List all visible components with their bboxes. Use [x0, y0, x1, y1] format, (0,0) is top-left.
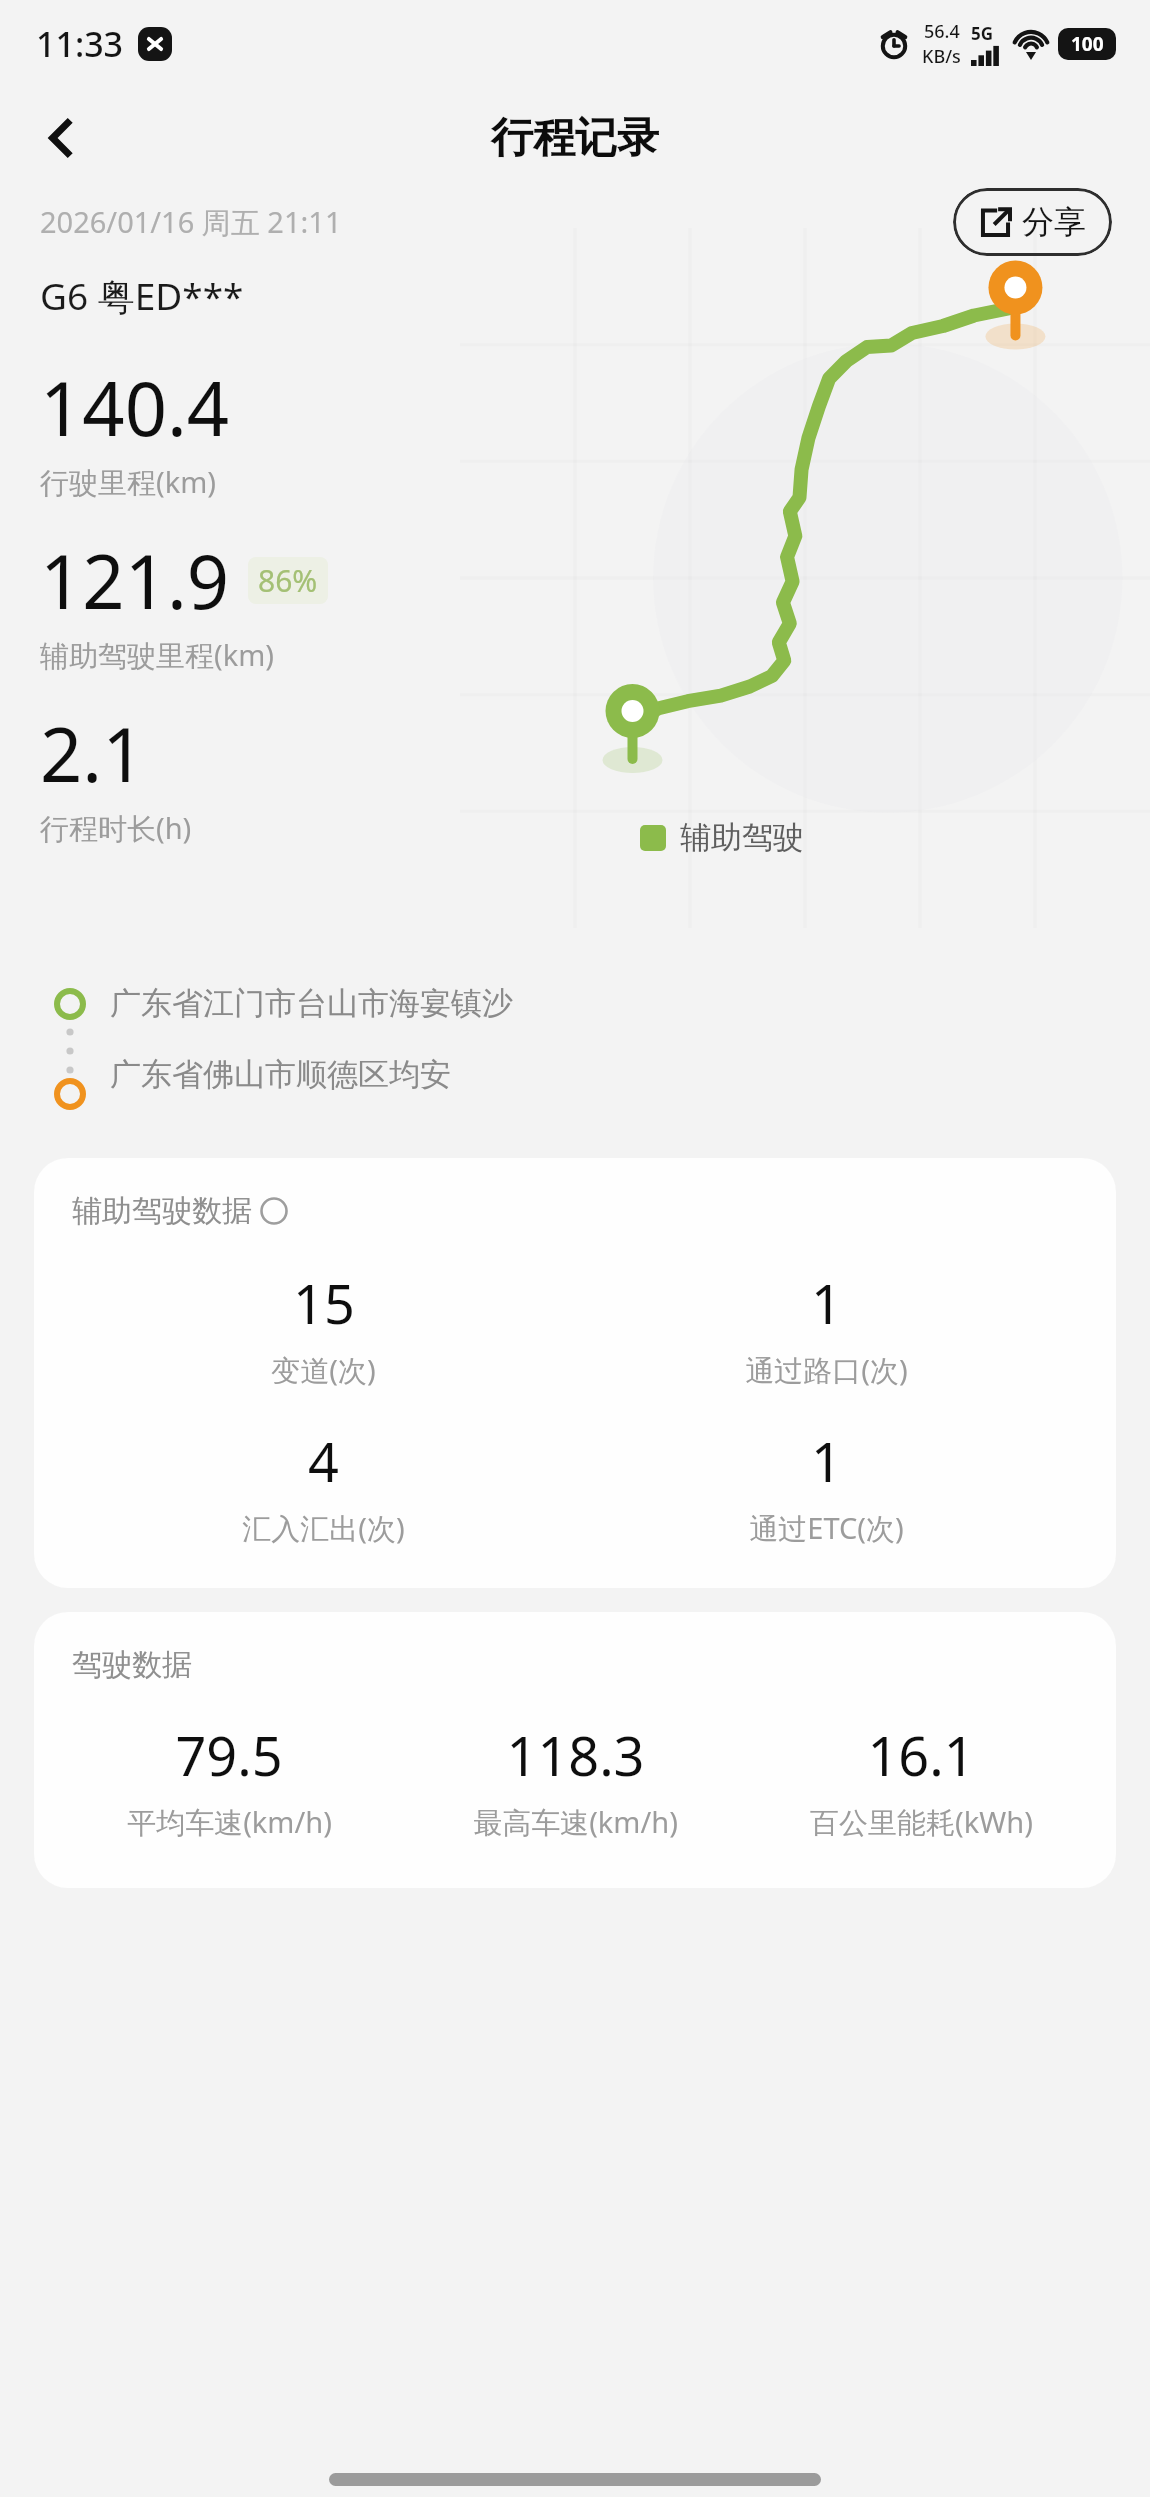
- staticText: 辅助驾驶数据: [72, 1192, 252, 1230]
- staticText: KB/s: [922, 44, 961, 69]
- staticText: 驾驶数据: [72, 1646, 192, 1684]
- staticText: 行程时长(h): [40, 808, 192, 848]
- staticText: 汇入汇出(次): [242, 1508, 405, 1548]
- staticText: 最高车速(km/h): [473, 1802, 678, 1842]
- staticText: 行程记录: [491, 112, 659, 165]
- staticText: 140.4: [40, 357, 230, 458]
- staticText: 分享: [1022, 202, 1086, 242]
- staticText: 广东省江门市台山市海宴镇沙: [110, 984, 513, 1023]
- staticText: 5G: [971, 22, 994, 45]
- button[interactable]: 分享: [953, 188, 1112, 256]
- staticText: 2026/01/16 周五 21:11: [40, 202, 342, 242]
- staticText: 100: [1071, 31, 1104, 57]
- staticText: 行驶里程(km): [40, 462, 217, 502]
- staticText: 4: [308, 1424, 339, 1498]
- staticText: 86%: [258, 560, 318, 601]
- staticText: 广东省佛山市顺德区均安: [110, 1055, 451, 1094]
- staticText: 56.4: [924, 19, 960, 44]
- staticText: 16.1: [867, 1718, 975, 1792]
- staticText: 平均车速(km/h): [127, 1802, 332, 1842]
- staticText: 百公里能耗(kWh): [810, 1802, 1033, 1842]
- button[interactable]: Back: [24, 99, 102, 177]
- button[interactable]: 辅助驾驶数据: [34, 1158, 1116, 1588]
- staticText: 121.9: [40, 530, 230, 631]
- staticText: 通过ETC(次): [749, 1508, 904, 1548]
- button[interactable]: 驾驶数据: [34, 1612, 1116, 1888]
- staticText: G6 粤ED***: [40, 270, 244, 321]
- staticText: 辅助驾驶: [680, 818, 804, 857]
- staticText: 1: [811, 1424, 842, 1498]
- staticText: 通过路口(次): [745, 1350, 908, 1390]
- staticText: 118.3: [506, 1718, 645, 1792]
- staticText: 1: [811, 1266, 842, 1340]
- staticText: 2.1: [40, 703, 145, 804]
- staticText: 15: [293, 1266, 355, 1340]
- staticText: 辅助驾驶里程(km): [40, 635, 275, 675]
- staticText: 79.5: [175, 1718, 283, 1792]
- staticText: 11:33: [36, 21, 124, 67]
- staticText: 变道(次): [271, 1350, 376, 1390]
